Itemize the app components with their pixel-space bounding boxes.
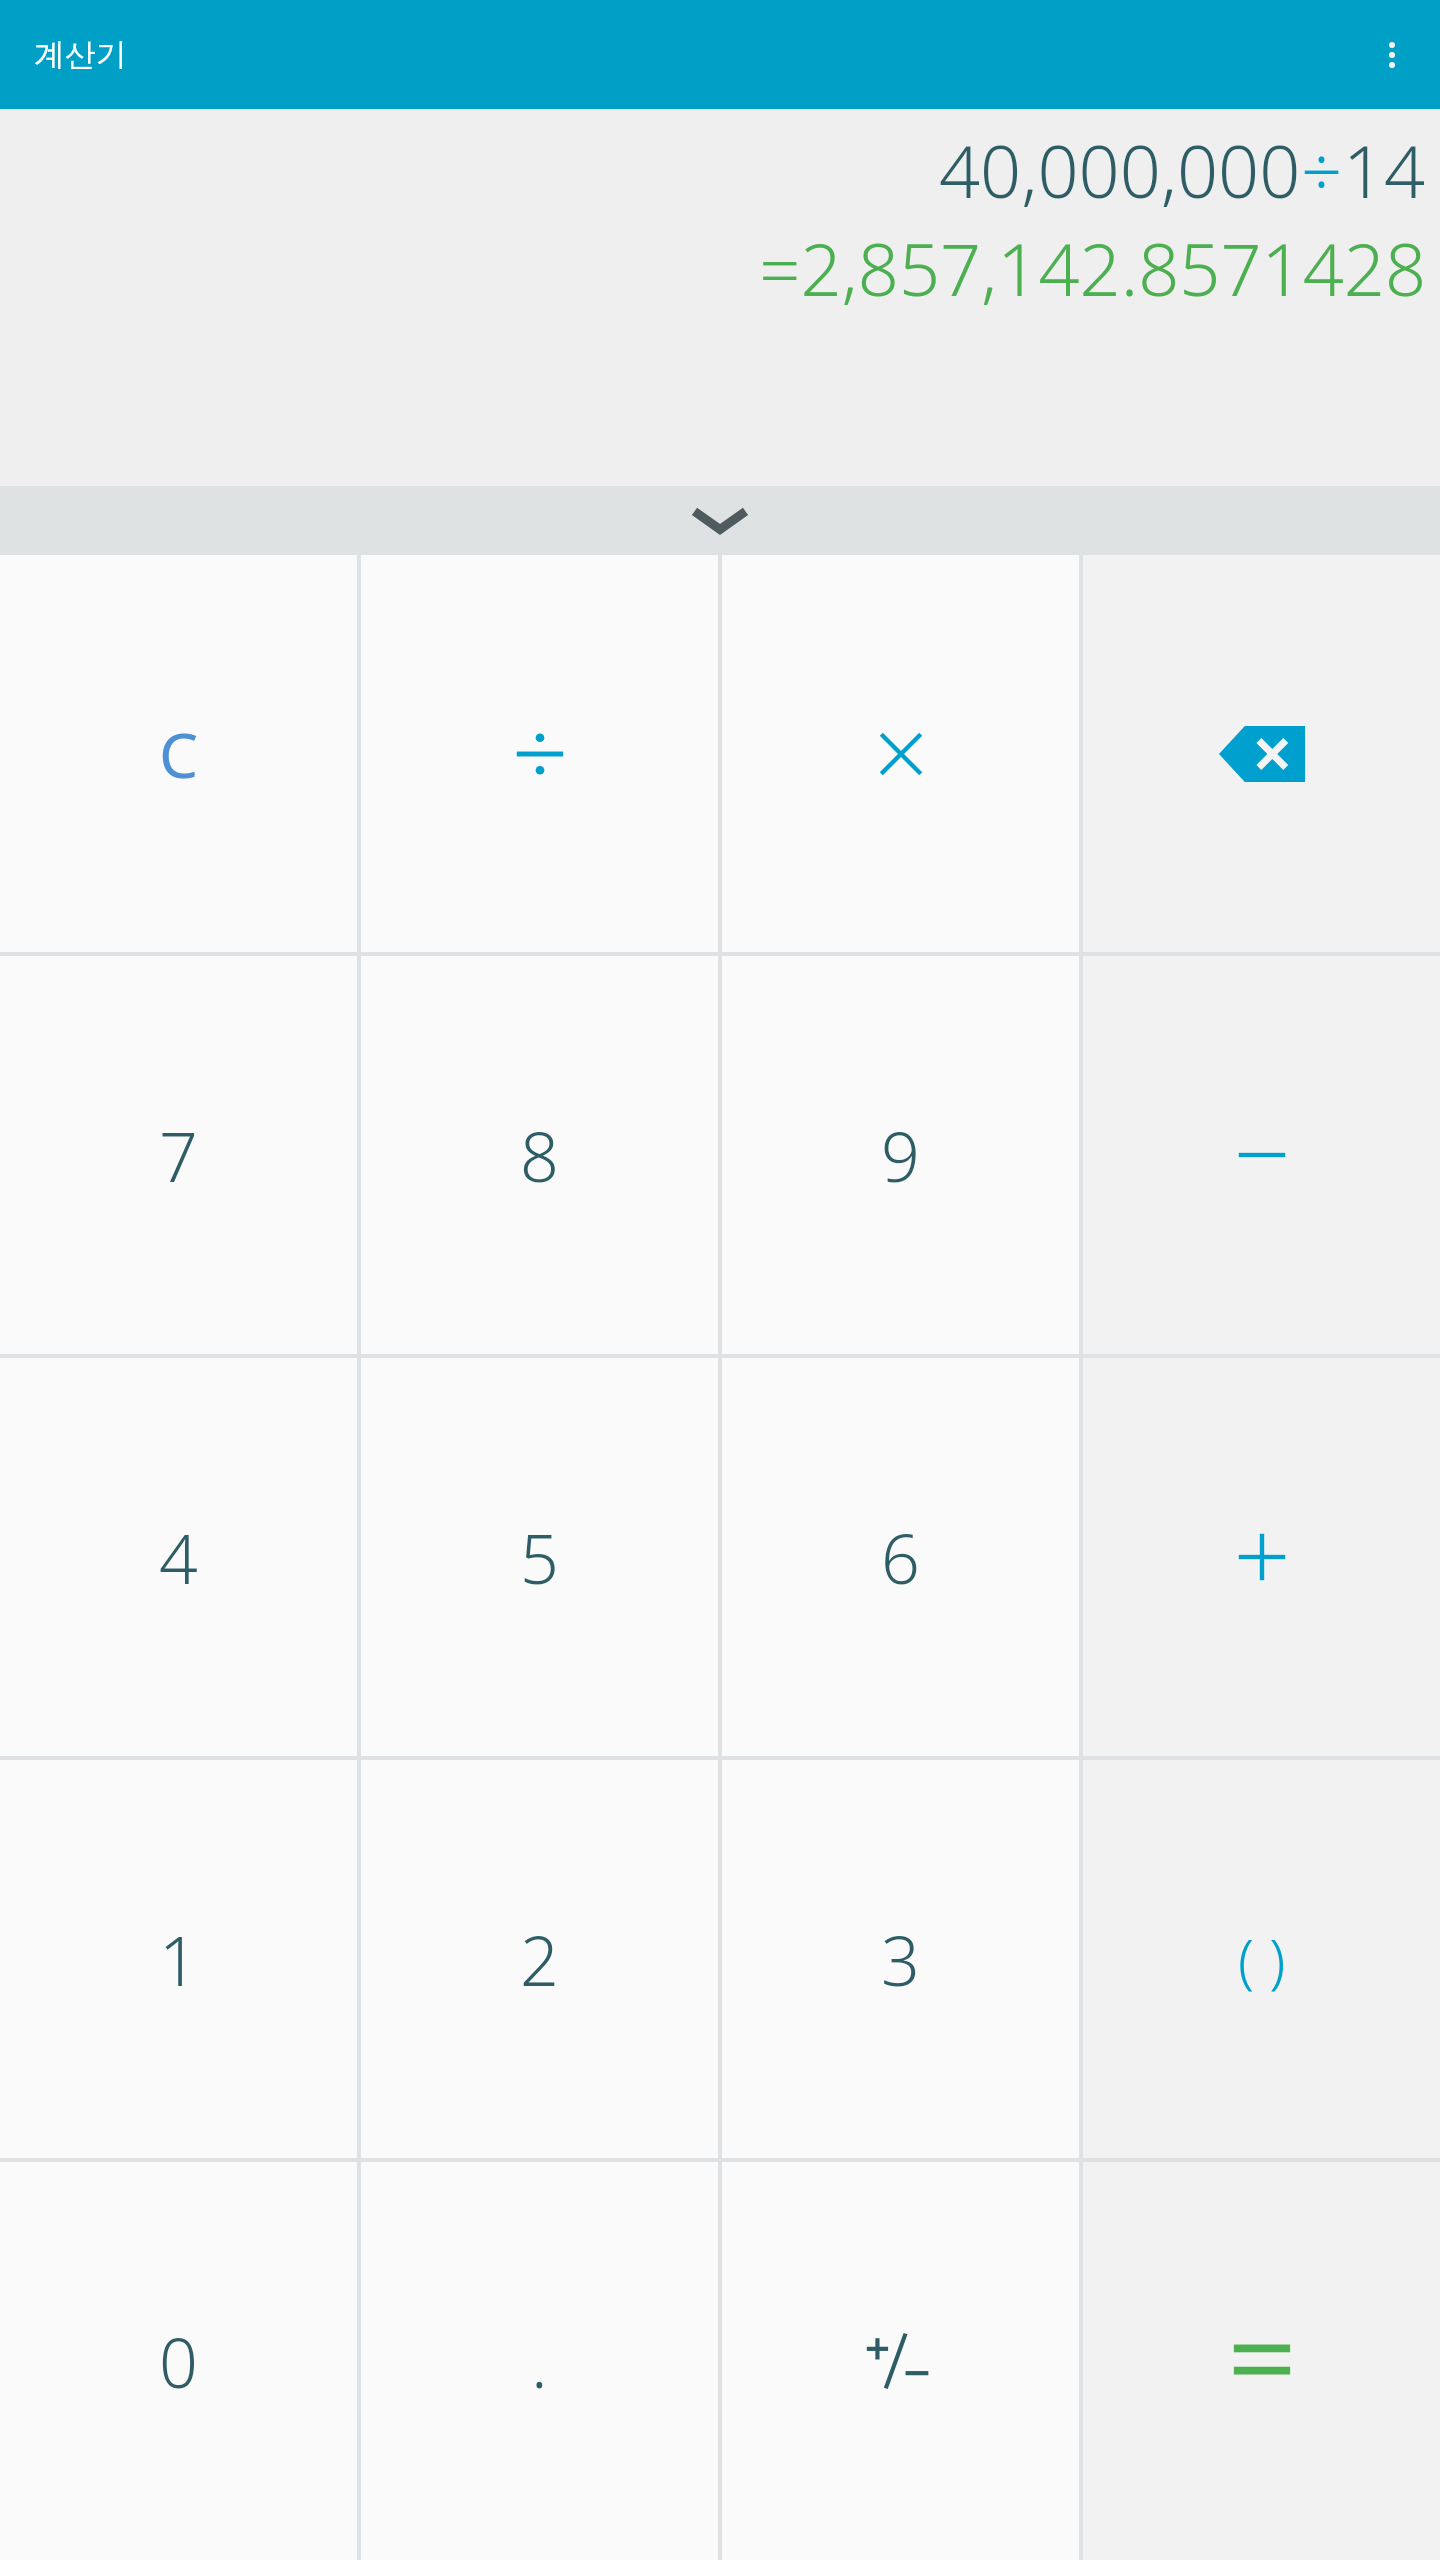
button[interactable]: Multiply — [722, 555, 1079, 952]
button[interactable]: 7 — [0, 956, 357, 1354]
staticText: 4 — [159, 1511, 198, 1604]
other: Plus — [1233, 1528, 1291, 1586]
button[interactable]: 1 — [0, 1760, 357, 2158]
button[interactable]: More options — [1364, 27, 1420, 83]
staticText: ÷ — [1301, 121, 1343, 219]
other: Multiply — [872, 725, 930, 783]
other: Backspace — [1219, 726, 1305, 782]
button[interactable]: 4 — [0, 1358, 357, 1756]
staticText: 40,000,000 — [939, 121, 1301, 219]
staticText: 6 — [881, 1511, 920, 1604]
staticText: . — [531, 2315, 548, 2408]
other: Equals — [1225, 2324, 1299, 2398]
button[interactable]: C — [0, 555, 357, 952]
button[interactable]: Backspace — [1083, 555, 1440, 952]
button[interactable]: ( ) — [1083, 1760, 1440, 2158]
button[interactable]: Equals — [1083, 2162, 1440, 2560]
staticText: 1 — [159, 1913, 198, 2006]
button[interactable]: 2 — [361, 1760, 718, 2158]
staticText: 0 — [159, 2315, 198, 2408]
staticText: ( ) — [1238, 1920, 1286, 1999]
button[interactable]: 9 — [722, 956, 1079, 1354]
staticText: 7 — [159, 1109, 198, 1202]
button[interactable]: Minus — [1083, 956, 1440, 1354]
button[interactable]: 0 — [0, 2162, 357, 2560]
staticText: 8 — [520, 1109, 559, 1202]
staticText: 9 — [881, 1109, 920, 1202]
staticText: 14 — [1343, 121, 1426, 219]
staticText: 5 — [520, 1511, 559, 1604]
button[interactable]: Toggle sign — [722, 2162, 1079, 2560]
staticText: 3 — [881, 1913, 920, 2006]
button[interactable]: 3 — [722, 1760, 1079, 2158]
other: Divide — [511, 725, 569, 783]
button[interactable]: Plus — [1083, 1358, 1440, 1756]
staticText: =2,857,142.8571428 — [759, 219, 1426, 317]
button[interactable]: 8 — [361, 956, 718, 1354]
button[interactable]: 5 — [361, 1358, 718, 1756]
button[interactable]: Collapse history — [0, 486, 1440, 555]
button[interactable]: 6 — [722, 1358, 1079, 1756]
other: Minus — [1233, 1126, 1291, 1184]
button[interactable]: Divide — [361, 555, 718, 952]
staticText: C — [159, 712, 199, 796]
staticText: 2 — [520, 1913, 559, 2006]
staticText: 계산기 — [34, 35, 127, 74]
other: Toggle sign — [863, 2323, 939, 2399]
